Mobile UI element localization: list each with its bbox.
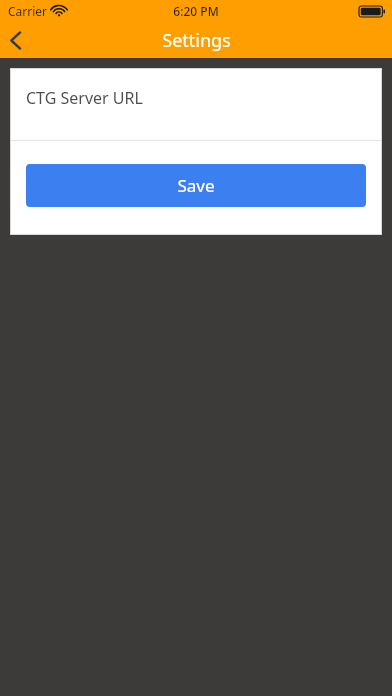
button[interactable]: Save — [26, 164, 366, 207]
staticText: Settings — [162, 28, 231, 53]
staticText: Carrier — [8, 3, 48, 19]
staticText: 6:20 PM — [173, 3, 219, 19]
button[interactable]: CTG Server URL — [10, 68, 382, 140]
staticText: CTG Server URL — [26, 87, 143, 109]
staticText: Save — [177, 174, 215, 197]
button[interactable]: Back — [0, 22, 44, 58]
